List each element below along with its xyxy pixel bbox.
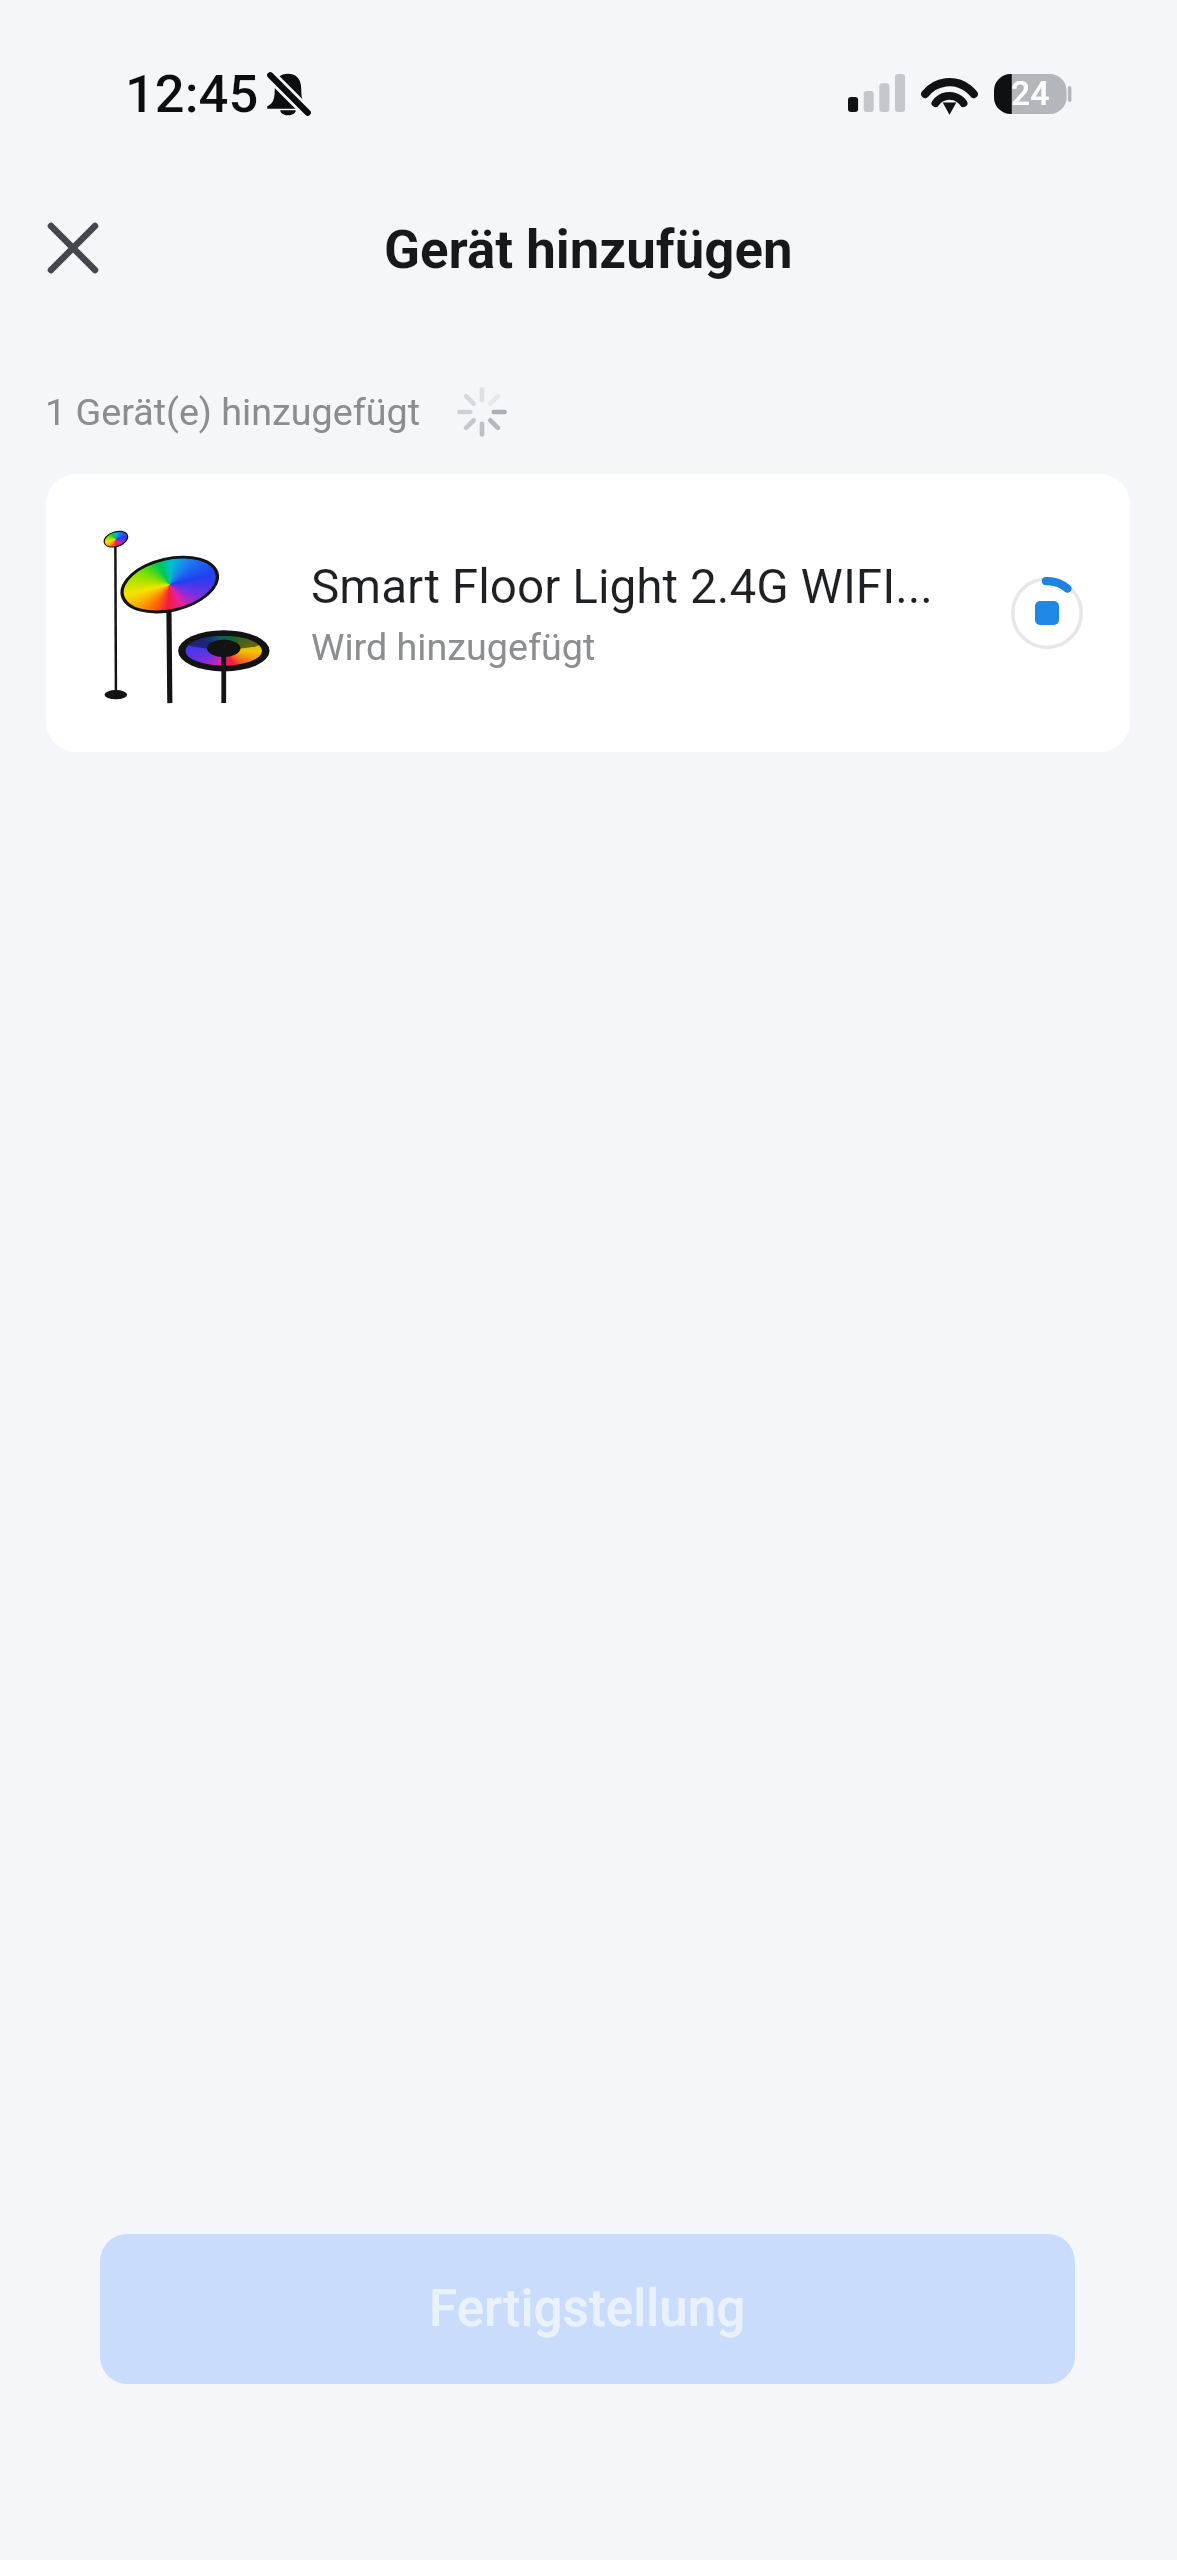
staticText: 24: [1011, 74, 1050, 114]
staticText: Wird hinzugefügt: [311, 625, 596, 669]
staticText: Gerät hinzufügen: [384, 219, 793, 281]
staticText: 1 Gerät(e) hinzugefügt: [45, 390, 420, 434]
button[interactable]: Close: [12, 190, 133, 311]
button[interactable]: Fertigstellung: [100, 2234, 1075, 2384]
button[interactable]: Smart Floor Light 2.4G WIFI...: [46, 474, 1130, 752]
staticText: Fertigstellung: [429, 2279, 746, 2339]
staticText: 12:45: [125, 63, 259, 125]
staticText: Smart Floor Light 2.4G WIFI...: [311, 559, 933, 615]
